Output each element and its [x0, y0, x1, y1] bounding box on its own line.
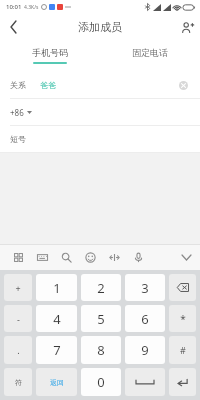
button[interactable]: Enter — [169, 368, 196, 396]
staticText: 6 — [141, 310, 149, 328]
button[interactable]: 关系 — [0, 72, 200, 98]
button[interactable]: Voice input — [126, 246, 150, 268]
button[interactable]: 8 — [81, 336, 121, 364]
staticText: 4.3K/s — [24, 4, 39, 11]
button[interactable]: Backspace — [169, 274, 196, 301]
button[interactable]: 1 — [36, 274, 77, 301]
button[interactable]: 7 — [36, 336, 77, 364]
button[interactable]: 0 — [81, 368, 121, 396]
button[interactable]: 4 — [36, 305, 77, 332]
button[interactable]: 5 — [81, 305, 121, 332]
staticText: +86 — [10, 107, 24, 118]
staticText: 2 — [97, 279, 105, 297]
staticText: 爸爸 — [40, 80, 56, 90]
button[interactable]: Keyboard — [30, 246, 54, 268]
button[interactable]: Back — [0, 14, 26, 40]
staticText: 9 — [141, 341, 149, 359]
button[interactable]: Apps — [6, 246, 30, 268]
button[interactable]: * — [169, 305, 196, 332]
staticText: 7 — [53, 341, 61, 359]
button[interactable]: 6 — [125, 305, 165, 332]
button[interactable]: 2 — [81, 274, 121, 301]
staticText: 1 — [53, 279, 61, 297]
button[interactable]: 固定电话 — [100, 40, 200, 70]
staticText: * — [180, 312, 186, 326]
button[interactable]: Search — [54, 246, 78, 268]
button[interactable]: + — [4, 274, 32, 301]
staticText: 手机号码 — [32, 47, 68, 58]
button[interactable]: - — [4, 305, 32, 332]
button[interactable]: 3 — [125, 274, 165, 301]
button[interactable]: Emoji — [78, 246, 102, 268]
button[interactable]: 9 — [125, 336, 165, 364]
staticText: 短号 — [10, 134, 26, 144]
button[interactable]: Add contact — [174, 14, 200, 40]
button[interactable]: Hide keyboard — [178, 249, 194, 265]
button[interactable]: 手机号码 — [0, 40, 100, 70]
staticText: 固定电话 — [132, 47, 168, 58]
button[interactable]: Translate — [102, 246, 126, 268]
button[interactable]: . — [4, 336, 32, 364]
staticText: 5 — [97, 310, 105, 328]
staticText: 10:01 — [6, 3, 22, 11]
staticText: 关系 — [10, 80, 26, 90]
staticText: - — [17, 313, 20, 325]
staticText: # — [180, 344, 186, 356]
button[interactable]: +86 — [10, 107, 32, 118]
staticText: 8 — [97, 341, 105, 359]
staticText: 添加成员 — [78, 20, 122, 34]
button[interactable]: Space — [125, 368, 165, 396]
staticText: 返回 — [50, 378, 64, 387]
staticText: 3 — [141, 279, 149, 297]
button[interactable]: Clear — [176, 78, 190, 92]
button[interactable]: 符 — [4, 368, 32, 396]
staticText: . — [17, 344, 20, 356]
staticText: 0 — [97, 373, 105, 391]
button[interactable]: 返回 — [36, 368, 77, 396]
staticText: 4 — [53, 310, 61, 328]
staticText: + — [15, 282, 21, 294]
staticText: 符 — [15, 378, 22, 387]
button[interactable]: # — [169, 336, 196, 364]
